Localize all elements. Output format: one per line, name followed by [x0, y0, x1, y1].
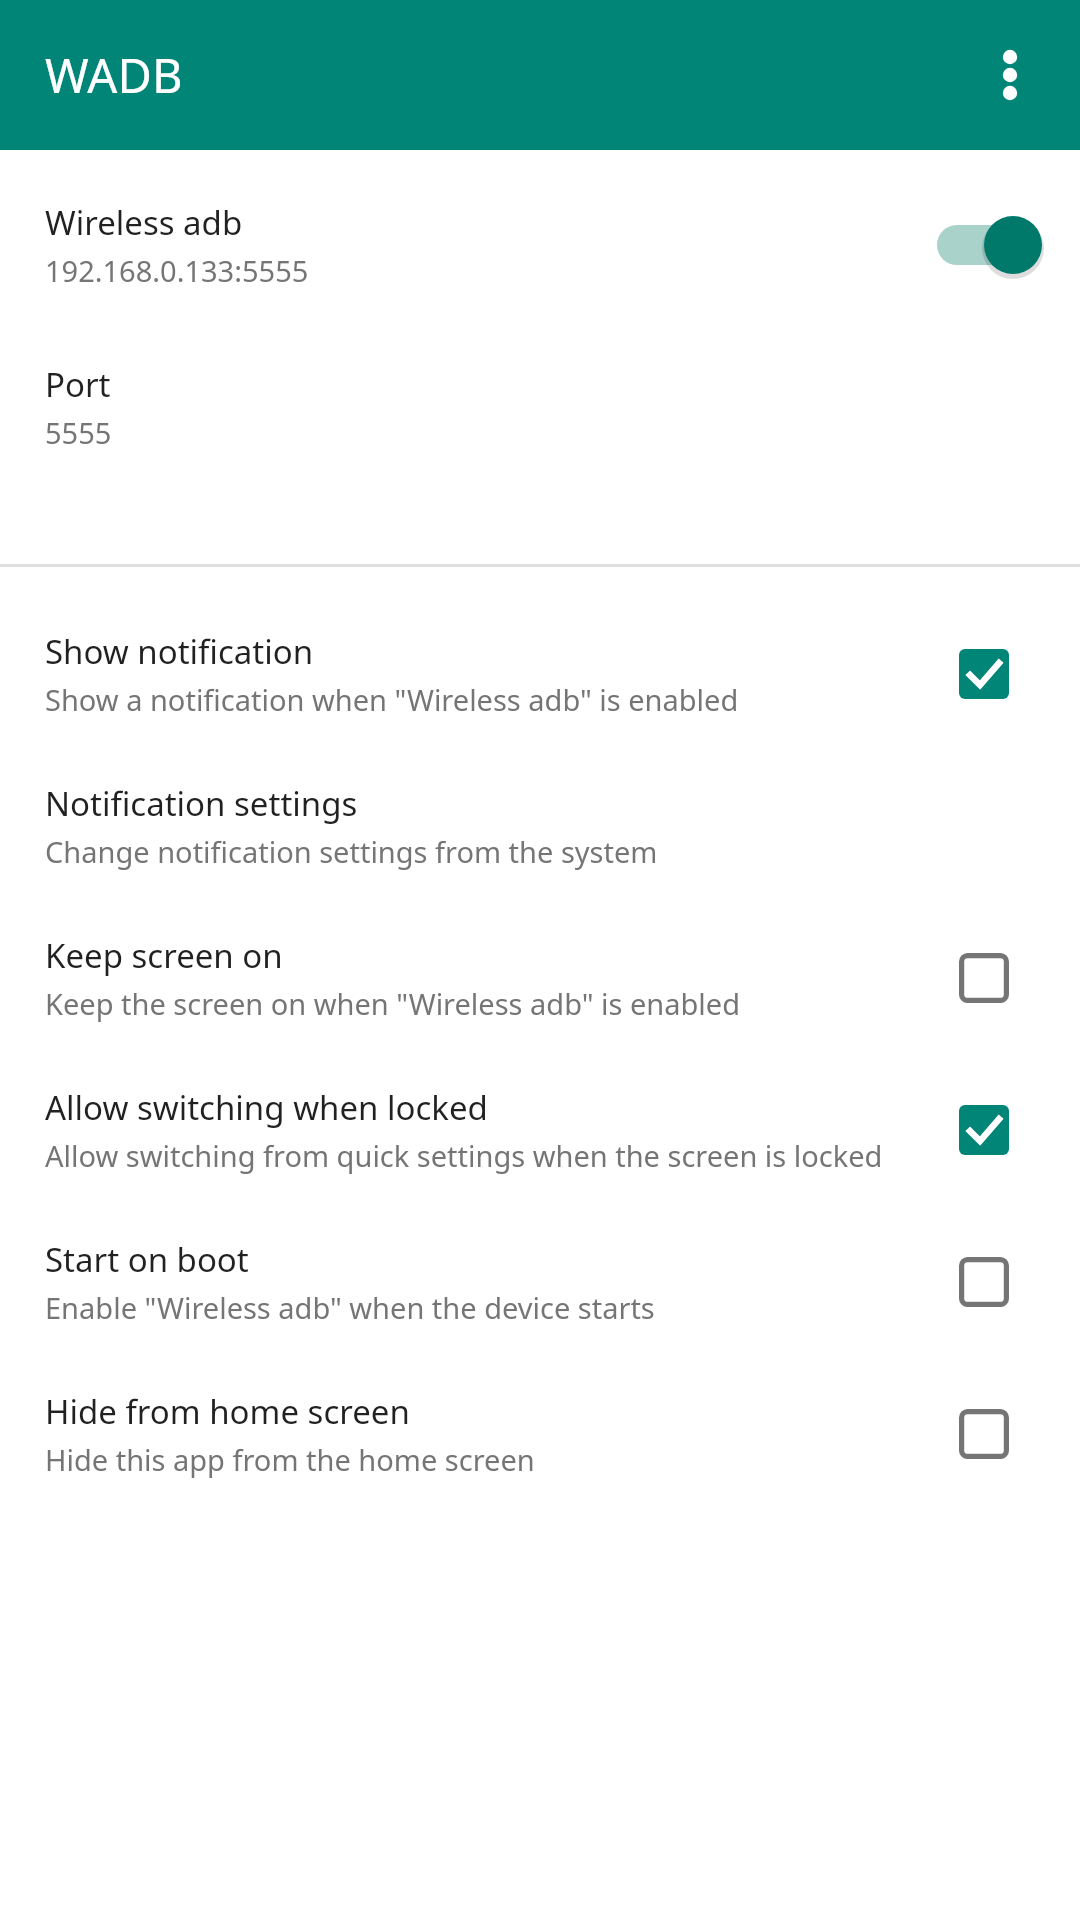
button[interactable]: Keep screen on [0, 871, 1080, 1023]
staticText: 5555 [45, 413, 112, 452]
staticText: 192.168.0.133:5555 [45, 251, 309, 290]
button[interactable]: Wireless adb toggle [928, 205, 1040, 285]
staticText: Hide from home screen [45, 1389, 410, 1434]
staticText: Show notification [45, 629, 314, 674]
staticText: Hide this app from the home screen [45, 1440, 535, 1479]
staticText: Keep the screen on when "Wireless adb" i… [45, 984, 741, 1023]
button[interactable]: Wireless adb [0, 152, 1080, 290]
button[interactable]: Unchecked [940, 1238, 1028, 1326]
button[interactable]: Show notification [0, 567, 1080, 719]
staticText: Show a notification when "Wireless adb" … [45, 680, 739, 719]
staticText: Notification settings [45, 781, 358, 826]
button[interactable]: Unchecked [940, 1390, 1028, 1478]
button[interactable]: Checked [940, 1086, 1028, 1174]
staticText: Start on boot [45, 1237, 249, 1282]
staticText: Keep screen on [45, 933, 283, 978]
button[interactable]: Port [0, 290, 1080, 452]
button[interactable]: Checked [940, 630, 1028, 718]
button[interactable]: Notification settings [0, 719, 1080, 871]
staticText: Enable "Wireless adb" when the device st… [45, 1288, 655, 1327]
button[interactable]: Start on boot [0, 1175, 1080, 1327]
staticText: Port [45, 362, 111, 407]
button[interactable]: Hide from home screen [0, 1327, 1080, 1479]
button[interactable]: Unchecked [940, 934, 1028, 1022]
staticText: WADB [45, 43, 183, 107]
staticText: Wireless adb [45, 200, 243, 245]
button[interactable]: Allow switching when locked [0, 1023, 1080, 1175]
button[interactable]: More options [962, 27, 1058, 123]
staticText: Allow switching when locked [45, 1085, 488, 1130]
staticText: Change notification settings from the sy… [45, 832, 658, 871]
staticText: Allow switching from quick settings when… [45, 1136, 883, 1175]
